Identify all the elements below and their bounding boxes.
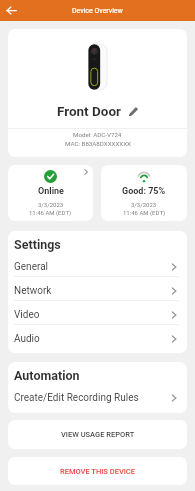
staticText: Good: 75%	[122, 186, 166, 197]
button[interactable]: Online	[8, 165, 93, 221]
button[interactable]: Edit name	[128, 106, 139, 117]
button[interactable]: Network	[8, 281, 187, 300]
button[interactable]: REMOVE THIS DEVICE	[8, 457, 187, 485]
staticText: Settings	[14, 237, 61, 252]
staticText: Automation	[14, 368, 80, 383]
staticText: 3/3/2023	[38, 201, 64, 208]
staticText: Audio	[14, 333, 40, 345]
button[interactable]: Back	[0, 0, 22, 21]
button[interactable]: General	[8, 257, 187, 276]
staticText: REMOVE THIS DEVICE	[60, 467, 135, 476]
staticText: Device Overview	[72, 7, 123, 15]
button[interactable]: VIEW USAGE REPORT	[8, 420, 187, 449]
staticText: Online	[38, 186, 64, 197]
button[interactable]: Create/Edit Recording Rules	[8, 388, 187, 407]
staticText: Create/Edit Recording Rules	[14, 392, 139, 404]
staticText: Model: ADC-V724	[73, 131, 122, 138]
staticText: Front Door	[57, 103, 122, 119]
staticText: MAC: B83A8DXXXXXXX	[65, 140, 131, 147]
button[interactable]: Audio	[8, 329, 187, 348]
staticText: 11:46 AM (EDT)	[123, 209, 166, 216]
button[interactable]: Good: 75%	[101, 165, 187, 221]
staticText: VIEW USAGE REPORT	[61, 430, 135, 439]
button[interactable]: Video	[8, 305, 187, 324]
staticText: Network	[14, 285, 52, 297]
staticText: Video	[14, 309, 40, 321]
staticText: 3/3/2023	[131, 201, 157, 208]
staticText: 11:46 AM (EDT)	[29, 209, 72, 216]
staticText: General	[14, 261, 49, 273]
